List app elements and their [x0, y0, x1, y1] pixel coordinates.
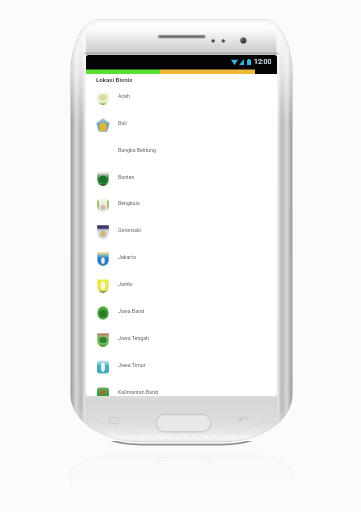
staticText: Jakarta: [118, 254, 136, 260]
button[interactable]: Gorontalo: [86, 216, 277, 243]
staticText: Bali: [118, 120, 127, 126]
staticText: Jawa Timur: [118, 362, 146, 368]
staticText: Banten: [118, 174, 135, 180]
staticText: Jambi: [118, 281, 133, 287]
staticText: Jawa Tengah: [118, 335, 150, 341]
staticText: Gorontalo: [118, 227, 142, 233]
button[interactable]: Bengkulu: [86, 189, 277, 216]
staticText: Bangka Belitung: [118, 147, 156, 153]
button[interactable]: Aceh: [86, 82, 277, 109]
staticText: Kalimantan Barat: [118, 389, 159, 395]
staticText: Aceh: [118, 93, 130, 99]
button[interactable]: Jawa Barat: [86, 297, 277, 324]
button[interactable]: Bangka Belitung: [86, 136, 277, 163]
button[interactable]: Jakarta: [86, 243, 277, 270]
button[interactable]: Kalimantan Barat: [86, 378, 277, 396]
button[interactable]: Jambi: [86, 270, 277, 297]
staticText: Jawa Barat: [118, 308, 145, 314]
staticText: 12:00: [254, 58, 272, 66]
staticText: Lokasi Bisnis: [96, 76, 133, 83]
button[interactable]: Banten: [86, 163, 277, 190]
staticText: Bengkulu: [118, 200, 140, 206]
button[interactable]: Jawa Tengah: [86, 324, 277, 351]
button[interactable]: Jawa Timur: [86, 351, 277, 378]
button[interactable]: Bali: [86, 109, 277, 136]
